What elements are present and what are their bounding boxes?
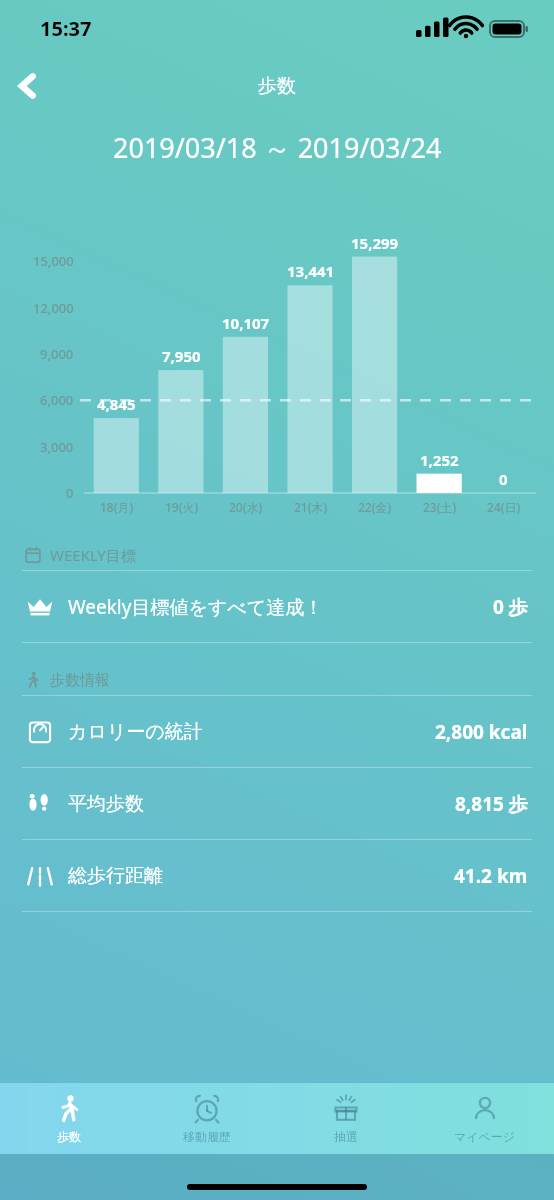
button[interactable]: 平均歩数: [0, 768, 554, 839]
button[interactable]: カロリーの統計: [0, 696, 554, 767]
staticText: 24(日): [487, 499, 521, 515]
staticText: 0 歩: [493, 594, 528, 620]
staticText: 歩数情報: [50, 671, 110, 690]
staticText: 22(金): [358, 499, 392, 515]
staticText: Weekly目標値をすべて達成！: [68, 594, 324, 620]
staticText: 10,107: [222, 313, 270, 333]
staticText: 18(月): [100, 499, 134, 515]
staticText: 歩数: [57, 1129, 81, 1144]
staticText: 12,000: [33, 299, 74, 317]
staticText: 3,000: [40, 438, 74, 456]
staticText: カロリーの統計: [68, 720, 203, 744]
staticText: 0: [499, 469, 508, 489]
staticText: 2,800 kcal: [435, 719, 528, 745]
staticText: 抽選: [334, 1129, 358, 1144]
staticText: 6,000: [40, 391, 74, 409]
staticText: 平均歩数: [68, 792, 144, 816]
staticText: 15:37: [40, 15, 92, 42]
staticText: 4,845: [97, 394, 136, 414]
staticText: 13,441: [287, 261, 335, 281]
staticText: 19(火): [165, 499, 199, 515]
staticText: 15,299: [351, 233, 399, 253]
staticText: 23(土): [423, 499, 457, 515]
staticText: 15,000: [33, 252, 74, 270]
button[interactable]: Weekly目標値をすべて達成！: [0, 571, 554, 642]
button[interactable]: Back: [0, 58, 56, 114]
staticText: 9,000: [40, 345, 74, 363]
staticText: 20(水): [229, 499, 263, 515]
button[interactable]: マイページ: [415, 1083, 554, 1154]
staticText: 総歩行距離: [68, 864, 163, 888]
staticText: マイページ: [454, 1129, 516, 1144]
staticText: 0: [66, 484, 74, 502]
staticText: 21(木): [294, 499, 328, 515]
staticText: 8,815 歩: [455, 791, 528, 817]
staticText: 歩数: [258, 74, 296, 98]
staticText: 移動履歴: [183, 1129, 231, 1144]
staticText: 1,252: [420, 450, 459, 470]
staticText: 7,950: [162, 346, 201, 366]
button[interactable]: 抽選: [276, 1083, 415, 1154]
staticText: 2019/03/18 ～ 2019/03/24: [113, 129, 442, 166]
button[interactable]: 歩数: [0, 1083, 138, 1154]
staticText: 41.2 km: [454, 863, 528, 889]
staticText: WEEKLY目標: [50, 545, 136, 565]
button[interactable]: 移動履歴: [138, 1083, 276, 1154]
button[interactable]: 総歩行距離: [0, 840, 554, 911]
